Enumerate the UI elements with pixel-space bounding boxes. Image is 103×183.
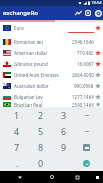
staticText: 2664.6050: [72, 72, 94, 78]
button[interactable]: 1: [5, 107, 29, 123]
staticText: .: [16, 157, 19, 169]
staticText: 5: [38, 125, 44, 137]
staticText: 2590.1464: [72, 102, 94, 107]
staticText: Australian dollar: [14, 83, 49, 89]
button[interactable]: .: [5, 155, 29, 171]
staticText: 1277.1464: [72, 94, 94, 100]
button[interactable]: Swap: [83, 8, 93, 18]
button[interactable]: Done: [75, 155, 98, 171]
button[interactable]: Delete: [75, 139, 98, 155]
staticText: Euro: [14, 25, 24, 31]
button[interactable]: American dollar: [0, 47, 103, 58]
staticText: exchangeRo: [3, 9, 38, 17]
button[interactable]: 8: [29, 139, 52, 155]
button[interactable]: Home: [47, 172, 57, 182]
staticText: 719.482: [77, 50, 94, 56]
button[interactable]: Brazilian Real: [0, 102, 103, 107]
button[interactable]: Separator: [75, 123, 98, 139]
button[interactable]: Recents: [72, 172, 82, 182]
staticText: Romanian leu: [14, 39, 44, 45]
staticText: Brazilian Real: [14, 102, 43, 107]
staticText: 8: [38, 141, 44, 153]
button[interactable]: Romanian leu: [0, 36, 103, 47]
button[interactable]: Minus: [75, 107, 98, 123]
staticText: 2546.1646: [72, 39, 94, 45]
button[interactable]: 7: [5, 139, 29, 155]
button[interactable]: 2: [29, 107, 52, 123]
button[interactable]: 3: [52, 107, 75, 123]
button[interactable]: Settings: [93, 8, 103, 18]
button[interactable]: Switch keyboard: [93, 173, 102, 182]
staticText: 16.9087: [77, 61, 94, 67]
button[interactable]: 9: [52, 139, 75, 155]
staticText: United Arab Emirates: [14, 72, 59, 78]
staticText: 990.0598: [74, 83, 94, 89]
button[interactable]: Gibraltar pound: [0, 58, 103, 69]
button[interactable]: 6: [52, 123, 75, 139]
button[interactable]: Australian dollar: [0, 80, 103, 91]
staticText: 2: [38, 109, 44, 121]
button[interactable]: 4: [5, 123, 29, 139]
staticText: 4: [14, 125, 20, 137]
button[interactable]: Chart: [73, 8, 83, 18]
button[interactable]: Bulgarian Lev: [0, 91, 103, 102]
staticText: 18:54: [91, 0, 102, 6]
staticText: 9: [61, 141, 67, 153]
button[interactable]: Euro: [0, 22, 103, 36]
staticText: 6: [61, 125, 67, 137]
staticText: 7: [14, 141, 20, 153]
staticText: 0: [38, 157, 44, 169]
staticText: 3: [61, 109, 67, 121]
button[interactable]: Back: [15, 172, 25, 182]
button[interactable]: 0: [29, 155, 52, 171]
staticText: American dollar: [14, 50, 48, 56]
staticText: 1: [14, 109, 20, 121]
staticText: Bulgarian Lev: [14, 94, 43, 100]
button[interactable]: United Arab Emirates: [0, 69, 103, 80]
button[interactable]: [83, 160, 90, 167]
staticText: Gibraltar pound: [14, 61, 48, 67]
button[interactable]: 5: [29, 123, 52, 139]
